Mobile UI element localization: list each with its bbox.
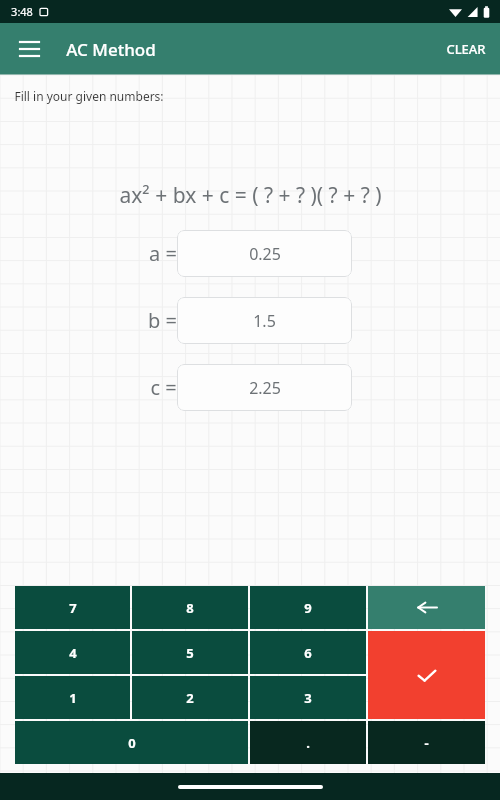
staticText: 2.25 (249, 377, 281, 399)
staticText: 0.25 (249, 243, 281, 265)
staticText: 4 (69, 644, 77, 662)
staticText: . (306, 734, 310, 752)
button[interactable]: Backspace (368, 586, 485, 629)
button[interactable]: 1.5 (177, 297, 352, 344)
button[interactable]: 4 (15, 631, 130, 674)
staticText: 9 (304, 599, 312, 617)
button[interactable]: 3 (250, 676, 366, 719)
button[interactable]: 9 (250, 586, 366, 629)
staticText: a = (149, 240, 177, 267)
button[interactable]: 6 (250, 631, 366, 674)
button[interactable]: 7 (15, 586, 130, 629)
button[interactable]: . (250, 721, 366, 764)
staticText: b = (148, 307, 177, 334)
staticText: 7 (69, 599, 77, 617)
staticText: 2 (186, 689, 194, 707)
button[interactable]: 5 (132, 631, 248, 674)
staticText: 3 (304, 689, 312, 707)
staticText: AC Method (66, 38, 156, 61)
button[interactable]: 8 (132, 586, 248, 629)
staticText: Fill in your given numbers: (14, 88, 164, 104)
button[interactable]: CLEAR (432, 23, 500, 75)
staticText: 5 (186, 644, 194, 662)
staticText: ax² + bx + c = ( ? + ? )( ? + ? ) (119, 181, 382, 210)
staticText: CLEAR (446, 40, 486, 58)
staticText: - (424, 734, 429, 752)
staticText: 3:48 (11, 4, 33, 19)
staticText: 8 (186, 599, 194, 617)
button[interactable]: 2 (132, 676, 248, 719)
button[interactable]: Submit answer (368, 631, 485, 719)
button[interactable]: 1 (15, 676, 130, 719)
button[interactable]: 0.25 (177, 230, 352, 277)
button[interactable]: - (368, 721, 485, 764)
button[interactable]: 0 (15, 721, 248, 764)
staticText: 1 (69, 689, 77, 707)
button[interactable]: 2.25 (177, 364, 352, 411)
staticText: 1.5 (253, 310, 276, 332)
staticText: 0 (128, 734, 136, 752)
button[interactable]: Open navigation menu (7, 27, 51, 71)
staticText: 6 (304, 644, 312, 662)
staticText: c = (150, 374, 177, 401)
